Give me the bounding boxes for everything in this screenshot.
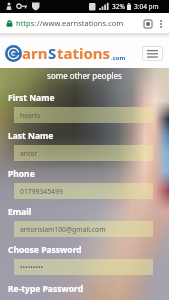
button[interactable]: ••••••••• — [14, 259, 153, 275]
button[interactable]: antorislam100@gmail.com — [14, 221, 153, 237]
staticText: S — [48, 43, 57, 63]
staticText: Last Name — [8, 130, 54, 142]
staticText: antorislam100@gmail.com — [20, 225, 106, 234]
staticText: 3:04 pm — [134, 2, 159, 11]
staticText: ://www.earnstations.com — [35, 18, 124, 28]
staticText: Choose Password — [8, 244, 82, 256]
staticText: hearts — [20, 111, 41, 120]
staticText: .com — [111, 54, 126, 62]
button[interactable]: antor — [14, 145, 153, 161]
button[interactable]: More options — [155, 18, 166, 29]
staticText: some other peoples — [0, 70, 169, 81]
button[interactable]: hearts — [14, 107, 153, 123]
staticText: ••••••••• — [20, 263, 44, 272]
staticText: antor — [20, 149, 38, 158]
staticText: First Name — [8, 92, 55, 104]
staticText: Email — [8, 206, 32, 218]
button[interactable]: Menu — [142, 46, 163, 61]
staticText: 01799345499 — [20, 187, 63, 196]
staticText: https — [16, 18, 35, 28]
staticText: arn — [22, 43, 48, 63]
staticText: tations — [57, 43, 111, 63]
staticText: Re-type Password — [8, 283, 84, 295]
button[interactable]: Tabs — [142, 18, 153, 29]
staticText: 32% — [112, 2, 125, 11]
button[interactable]: 01799345499 — [14, 183, 153, 199]
staticText: Phone — [8, 168, 35, 180]
